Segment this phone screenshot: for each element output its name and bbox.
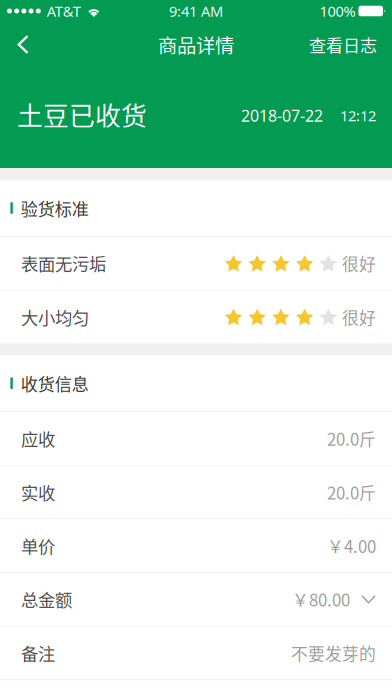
staticText: 100% <box>319 1 355 21</box>
staticText: ￥4.00 <box>327 533 376 558</box>
button[interactable]: 应收 <box>0 412 392 465</box>
staticText: ￥80.00 <box>292 587 350 611</box>
button[interactable]: 总金额 <box>0 573 392 626</box>
staticText: 12:12 <box>340 105 376 125</box>
button[interactable]: 备注 <box>0 627 392 679</box>
staticText: 查看日志 <box>309 32 377 57</box>
staticText: 总金额 <box>21 587 72 612</box>
staticText: 大小均匀 <box>21 304 89 329</box>
staticText: 商品详情 <box>158 30 234 58</box>
staticText: 实收 <box>21 480 55 505</box>
staticText: 备注 <box>21 640 55 665</box>
staticText: 收货信息 <box>21 371 89 395</box>
staticText: 不要发芽的 <box>291 641 376 665</box>
staticText: 很好 <box>342 305 376 329</box>
staticText: AT&T <box>47 1 81 21</box>
button[interactable]: 单价 <box>0 519 392 572</box>
staticText: 20.0斤 <box>327 426 376 451</box>
staticText: 2018-07-22 <box>241 105 323 126</box>
staticText: 土豆已收货 <box>17 96 147 133</box>
button[interactable]: 查看日志 <box>295 19 392 70</box>
staticText: 应收 <box>21 426 55 451</box>
staticText: 单价 <box>21 533 55 558</box>
staticText: 9:41 AM <box>169 1 223 21</box>
button[interactable]: 大小均匀 <box>0 291 392 343</box>
staticText: 很好 <box>342 251 376 275</box>
button[interactable]: 返回 <box>0 23 43 66</box>
button[interactable]: 表面无污垢 <box>0 237 392 290</box>
button[interactable]: 实收 <box>0 466 392 518</box>
staticText: 20.0斤 <box>327 480 376 504</box>
staticText: 验货标准 <box>21 196 89 220</box>
staticText: 表面无污垢 <box>21 251 106 276</box>
